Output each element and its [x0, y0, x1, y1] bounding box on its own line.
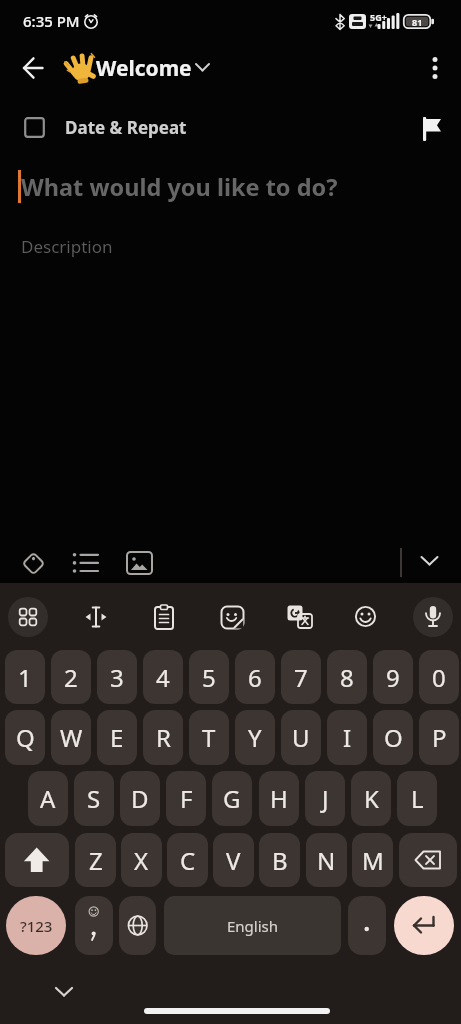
staticText: Description — [21, 235, 113, 258]
button[interactable]: Y — [235, 710, 275, 765]
staticText: 81 — [412, 16, 423, 28]
button[interactable]: M — [352, 833, 393, 887]
button[interactable] — [419, 113, 447, 143]
button[interactable]: 5 — [189, 650, 229, 704]
staticText: What would you like to do? — [21, 171, 338, 203]
staticText: Z — [89, 844, 103, 877]
button[interactable] — [287, 604, 313, 630]
button[interactable]: Z — [75, 833, 116, 887]
button[interactable]: L — [397, 771, 437, 826]
staticText: B — [272, 844, 288, 877]
button[interactable] — [60, 48, 220, 88]
button[interactable]: J — [305, 771, 345, 826]
staticText: J — [322, 782, 329, 815]
button[interactable] — [220, 605, 245, 630]
button[interactable]: K — [351, 771, 391, 826]
staticText: English — [227, 916, 279, 936]
staticText: 1 — [18, 661, 32, 694]
button[interactable] — [72, 552, 101, 575]
button[interactable]: R — [143, 710, 183, 765]
staticText: 5 — [202, 661, 216, 694]
staticText: Q — [16, 721, 35, 754]
button[interactable]: 6 — [235, 650, 275, 704]
staticText: 7 — [294, 661, 308, 694]
button[interactable]: F — [166, 771, 206, 826]
staticText: F — [180, 782, 193, 815]
staticText: M — [362, 844, 384, 877]
button[interactable] — [20, 550, 47, 577]
button[interactable]: 4 — [143, 650, 183, 704]
staticText: A — [40, 782, 56, 815]
button[interactable] — [52, 984, 76, 1000]
button[interactable]: 0 — [419, 650, 459, 704]
button[interactable]: 1 — [5, 650, 45, 704]
button[interactable]: 2 — [51, 650, 91, 704]
staticText: L — [411, 782, 424, 815]
button[interactable]: C — [167, 833, 208, 887]
button[interactable]: D — [120, 771, 160, 826]
staticText: D — [131, 782, 149, 815]
button[interactable]: U — [281, 710, 321, 765]
staticText: 8 — [340, 661, 354, 694]
button[interactable]: ?123 — [6, 896, 66, 955]
button[interactable]: 3 — [97, 650, 137, 704]
button[interactable] — [84, 605, 108, 629]
button[interactable] — [399, 833, 457, 887]
button[interactable] — [394, 896, 454, 955]
button[interactable] — [24, 117, 45, 138]
button[interactable] — [424, 52, 446, 84]
button[interactable] — [14, 50, 54, 86]
button[interactable]: 8 — [327, 650, 367, 704]
staticText: Welcome — [96, 54, 192, 83]
button[interactable]: B — [259, 833, 300, 887]
button[interactable]: O — [373, 710, 413, 765]
button[interactable]: English — [164, 896, 341, 955]
staticText: C — [180, 844, 196, 877]
button[interactable]: I — [327, 710, 367, 765]
staticText: W — [60, 721, 83, 754]
button[interactable]: Q — [5, 710, 45, 765]
button[interactable]: V — [213, 833, 254, 887]
staticText: 6 — [248, 661, 262, 694]
staticText: 3 — [110, 661, 124, 694]
staticText: S — [87, 782, 101, 815]
staticText: 4 — [156, 661, 170, 694]
staticText: T — [202, 721, 216, 754]
button[interactable] — [126, 551, 153, 575]
button[interactable]: H — [259, 771, 299, 826]
button[interactable]: N — [306, 833, 347, 887]
button[interactable] — [354, 605, 377, 628]
button[interactable]: Date & Repeat — [65, 110, 215, 145]
button[interactable]: 7 — [281, 650, 321, 704]
staticText: H — [270, 782, 288, 815]
button[interactable]: Description — [21, 233, 441, 259]
staticText: ?123 — [20, 916, 53, 936]
button[interactable]: S — [74, 771, 114, 826]
button[interactable]: W — [51, 710, 91, 765]
button[interactable] — [8, 597, 48, 637]
button[interactable]: X — [121, 833, 162, 887]
button[interactable] — [418, 553, 441, 569]
button[interactable]: P — [419, 710, 459, 765]
button[interactable]: What would you like to do? — [21, 170, 441, 204]
button[interactable] — [348, 896, 386, 955]
staticText: Y — [248, 721, 262, 754]
staticText: 5G+ — [370, 11, 387, 22]
staticText: U — [292, 721, 310, 754]
button[interactable]: E — [97, 710, 137, 765]
staticText: 9 — [386, 661, 400, 694]
button[interactable] — [119, 896, 156, 955]
button[interactable] — [75, 896, 113, 955]
button[interactable]: T — [189, 710, 229, 765]
staticText: K — [364, 782, 379, 815]
button[interactable]: 9 — [373, 650, 413, 704]
staticText: 6:35 PM — [23, 11, 80, 31]
staticText: Date & Repeat — [65, 116, 187, 139]
staticText: R — [156, 721, 171, 754]
button[interactable] — [413, 597, 453, 637]
button[interactable] — [193, 61, 212, 74]
button[interactable]: G — [212, 771, 252, 826]
button[interactable] — [5, 833, 69, 887]
button[interactable]: A — [28, 771, 68, 826]
button[interactable] — [153, 604, 175, 631]
